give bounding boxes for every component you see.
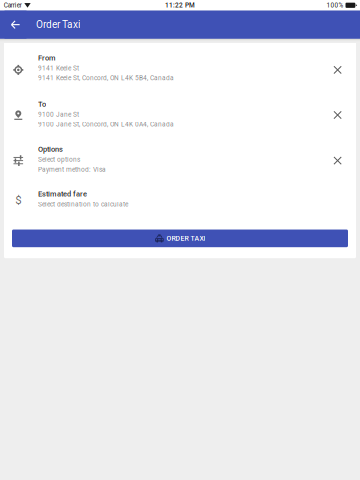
staticText: To bbox=[38, 100, 46, 108]
staticText: Select options bbox=[38, 156, 80, 163]
staticText: Options bbox=[38, 145, 63, 154]
staticText: Payment method: Visa bbox=[38, 166, 106, 173]
button[interactable]: From bbox=[4, 43, 356, 89]
staticText: Select destination to calculate bbox=[38, 200, 128, 208]
button[interactable]: Options bbox=[4, 134, 356, 179]
button[interactable]: Clear Options bbox=[328, 151, 348, 171]
staticText: 9141 Keele St, Concord, ON L4K 5B4, Cana… bbox=[38, 74, 174, 82]
staticText: Carrier bbox=[4, 1, 22, 9]
button[interactable]: $ bbox=[4, 179, 356, 215]
staticText: 100% bbox=[326, 1, 343, 9]
staticText: Order Taxi bbox=[36, 19, 80, 31]
button[interactable]: Clear To bbox=[328, 105, 348, 125]
staticText: From bbox=[38, 53, 56, 62]
button[interactable]: To bbox=[4, 89, 356, 134]
staticText: Estimated fare bbox=[38, 190, 87, 198]
staticText: 9141 Keele St bbox=[38, 64, 79, 72]
button[interactable]: ORDER TAXI bbox=[12, 229, 348, 247]
staticText: 9100 Jane St, Concord, ON L4K 0A4, Canad… bbox=[38, 120, 174, 128]
button[interactable]: Clear From bbox=[328, 60, 348, 80]
staticText: $ bbox=[15, 193, 21, 207]
staticText: 9100 Jane St bbox=[38, 111, 79, 118]
staticText: ORDER TAXI bbox=[166, 234, 205, 242]
button[interactable]: Back bbox=[4, 11, 26, 39]
staticText: 11:22 PM bbox=[165, 1, 195, 9]
